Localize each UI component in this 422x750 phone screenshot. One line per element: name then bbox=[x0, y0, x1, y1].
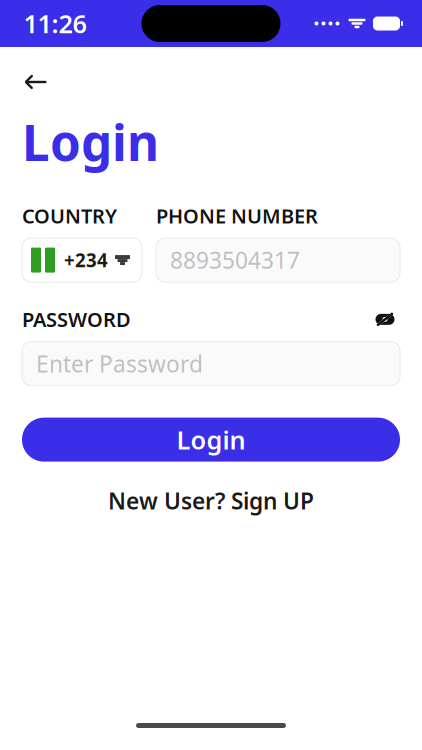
button[interactable]: Login bbox=[22, 418, 400, 462]
staticText: PASSWORD bbox=[22, 306, 131, 333]
staticText: New User? Sign UP bbox=[108, 486, 314, 516]
staticText: PHONE NUMBER bbox=[156, 202, 318, 229]
staticText: 11:26 bbox=[23, 7, 86, 40]
staticText: Enter Password bbox=[36, 349, 203, 379]
staticText: COUNTRY bbox=[22, 202, 117, 229]
button[interactable]: 8893504317 bbox=[156, 238, 400, 282]
button[interactable]: Show password bbox=[370, 309, 400, 329]
button[interactable]: +234 bbox=[22, 238, 142, 282]
button[interactable]: Back bbox=[22, 65, 62, 99]
staticText: 8893504317 bbox=[170, 245, 300, 275]
staticText: Login bbox=[22, 109, 159, 174]
staticText: Login bbox=[176, 423, 245, 456]
button[interactable]: Enter Password bbox=[22, 342, 400, 386]
button[interactable]: New User? Sign UP bbox=[22, 480, 400, 522]
staticText: +234 bbox=[64, 248, 108, 272]
